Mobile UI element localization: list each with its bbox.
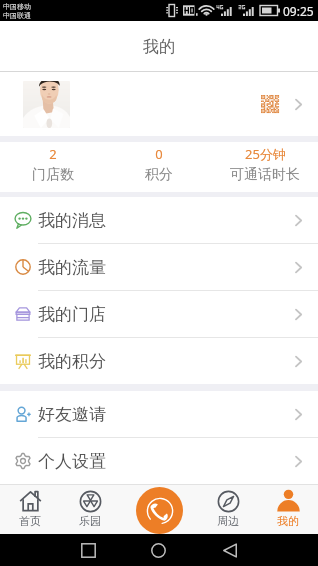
button[interactable]: 乐园: [60, 484, 120, 534]
staticText: 积分: [145, 166, 173, 184]
button[interactable]: 首页: [0, 484, 60, 534]
button[interactable]: 25分钟: [212, 142, 318, 192]
staticText: 乐园: [79, 514, 101, 528]
staticText: 中国联通: [3, 11, 31, 20]
staticText: 25分钟: [245, 145, 286, 163]
staticText: 可通话时长: [230, 166, 300, 184]
staticText: 09:25: [283, 3, 314, 19]
staticText: 我的门店: [38, 304, 106, 325]
staticText: 个人设置: [38, 451, 106, 472]
button[interactable]: Home: [146, 538, 171, 563]
staticText: 0: [155, 145, 163, 163]
button[interactable]: 我的流量: [0, 244, 318, 290]
button[interactable]: 好友邀请: [0, 391, 318, 437]
staticText: 首页: [19, 514, 41, 528]
button[interactable]: Back: [217, 538, 242, 563]
staticText: 门店数: [32, 166, 74, 184]
staticText: 好友邀请: [38, 404, 106, 425]
button[interactable]: Call: [136, 487, 183, 534]
button[interactable]: 周边: [198, 484, 258, 534]
button[interactable]: Recents: [76, 538, 101, 563]
button[interactable]: [0, 72, 318, 136]
staticText: 周边: [217, 514, 239, 528]
button[interactable]: 我的门店: [0, 291, 318, 337]
staticText: 2: [49, 145, 57, 163]
staticText: 我的积分: [38, 351, 106, 372]
staticText: 中国移动: [3, 2, 31, 11]
button[interactable]: 我的积分: [0, 338, 318, 384]
staticText: 我的: [143, 37, 175, 57]
button[interactable]: 0: [106, 142, 212, 192]
button[interactable]: 我的: [258, 484, 318, 534]
staticText: 我的: [277, 514, 299, 528]
button[interactable]: 我的消息: [0, 197, 318, 243]
button[interactable]: 2: [0, 142, 106, 192]
staticText: 我的流量: [38, 257, 106, 278]
button[interactable]: 个人设置: [0, 438, 318, 484]
staticText: 我的消息: [38, 210, 106, 231]
